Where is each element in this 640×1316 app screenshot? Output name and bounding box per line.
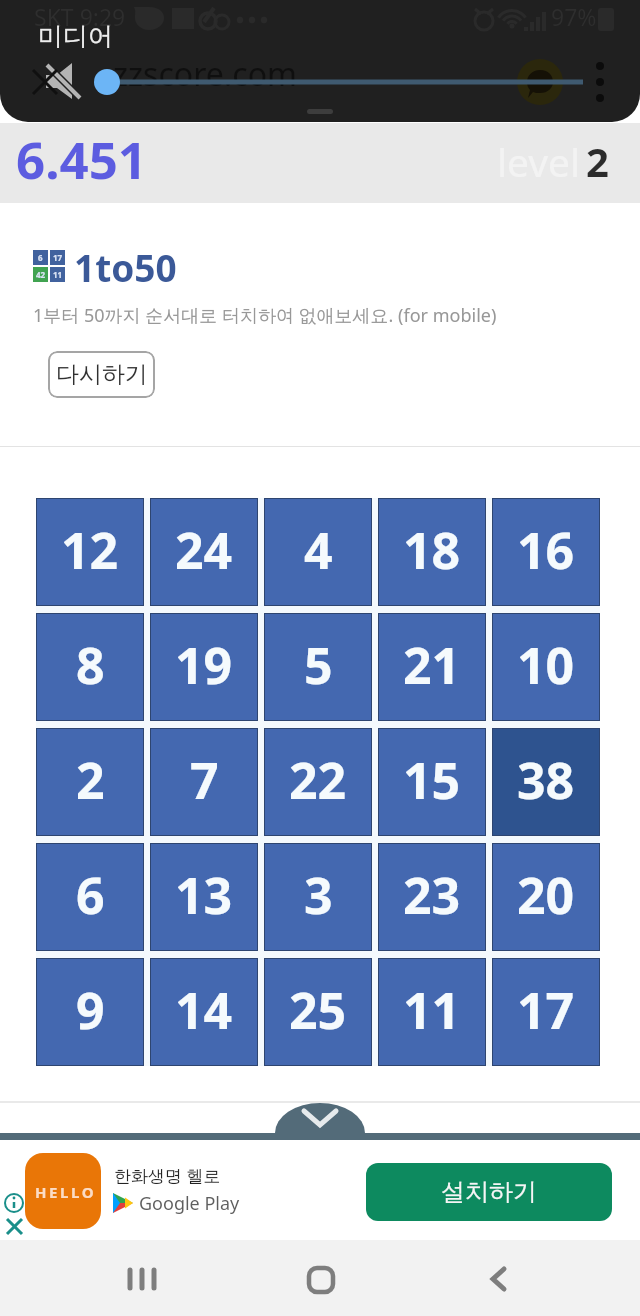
staticText: 1to50 xyxy=(74,242,177,292)
button[interactable]: Home xyxy=(260,1240,380,1316)
button[interactable]: 8 xyxy=(36,613,144,721)
button[interactable]: 14 xyxy=(150,958,258,1066)
staticText: 19 xyxy=(175,631,233,699)
button[interactable]: 17 xyxy=(492,958,600,1066)
staticText: 3 xyxy=(304,861,333,929)
button[interactable]: 22 xyxy=(264,728,372,836)
staticText: 21 xyxy=(403,631,461,699)
staticText: 2 xyxy=(586,134,609,188)
button[interactable]: 13 xyxy=(150,843,258,951)
staticText: 97% xyxy=(551,1,597,32)
button[interactable]: 12 xyxy=(36,498,144,606)
staticText: 8 xyxy=(76,631,105,699)
button[interactable]: 11 xyxy=(378,958,486,1066)
button[interactable]: 38 xyxy=(492,728,600,836)
staticText: 18 xyxy=(403,516,461,584)
button[interactable]: 20 xyxy=(492,843,600,951)
staticText: 12 xyxy=(61,516,119,584)
staticText: 22 xyxy=(289,746,347,814)
button[interactable]: 2 xyxy=(36,728,144,836)
button[interactable]: 설치하기 xyxy=(366,1163,612,1221)
button[interactable]: 4 xyxy=(264,498,372,606)
staticText: 6 xyxy=(76,861,105,929)
staticText: SKT 9:29 xyxy=(34,1,126,32)
staticText: 15 xyxy=(403,746,461,814)
button[interactable]: 9 xyxy=(36,958,144,1066)
button[interactable]: 18 xyxy=(378,498,486,606)
staticText: 17 xyxy=(53,252,63,263)
staticText: 16 xyxy=(517,516,575,584)
button[interactable]: 15 xyxy=(378,728,486,836)
staticText: 4 xyxy=(304,516,333,584)
staticText: 7 xyxy=(190,746,219,814)
staticText: 2 xyxy=(76,746,105,814)
staticText: 38 xyxy=(517,746,575,814)
button[interactable]: 5 xyxy=(264,613,372,721)
button[interactable]: 21 xyxy=(378,613,486,721)
staticText: 11 xyxy=(403,976,461,1044)
staticText: 한화생명 헬로 xyxy=(114,1164,221,1187)
button[interactable]: 6 xyxy=(36,843,144,951)
button[interactable]: Recent apps xyxy=(80,1240,200,1316)
staticText: 25 xyxy=(289,976,347,1044)
button[interactable]: 19 xyxy=(150,613,258,721)
staticText: 다시하기 xyxy=(56,360,148,389)
staticText: 1부터 50까지 순서대로 터치하여 없애보세요. (for mobile) xyxy=(33,303,497,328)
button[interactable]: 16 xyxy=(492,498,600,606)
staticText: 24 xyxy=(175,516,233,584)
staticText: 6.451 xyxy=(16,124,148,193)
staticText: level xyxy=(497,135,581,188)
staticText: HELLO xyxy=(35,1182,97,1202)
staticText: 42 xyxy=(36,269,46,280)
staticText: Google Play xyxy=(139,1191,240,1216)
staticText: 14 xyxy=(175,976,233,1044)
button[interactable]: 24 xyxy=(150,498,258,606)
button[interactable]: 3 xyxy=(264,843,372,951)
staticText: 5 xyxy=(304,631,333,699)
staticText: 23 xyxy=(403,861,461,929)
staticText: 13 xyxy=(175,861,233,929)
button[interactable]: 10 xyxy=(492,613,600,721)
staticText: 설치하기 xyxy=(441,1177,537,1207)
staticText: 17 xyxy=(517,976,575,1044)
staticText: 미디어 xyxy=(38,21,113,52)
staticText: 9 xyxy=(76,976,105,1044)
staticText: 10 xyxy=(517,631,575,699)
button[interactable]: 7 xyxy=(150,728,258,836)
staticText: 20 xyxy=(517,861,575,929)
button[interactable]: 25 xyxy=(264,958,372,1066)
button[interactable]: 23 xyxy=(378,843,486,951)
button[interactable]: 다시하기 xyxy=(48,351,155,398)
button[interactable]: Back xyxy=(440,1240,560,1316)
staticText: 6 xyxy=(38,252,43,263)
staticText: zzscore.com xyxy=(113,52,297,96)
staticText: 11 xyxy=(53,269,63,280)
